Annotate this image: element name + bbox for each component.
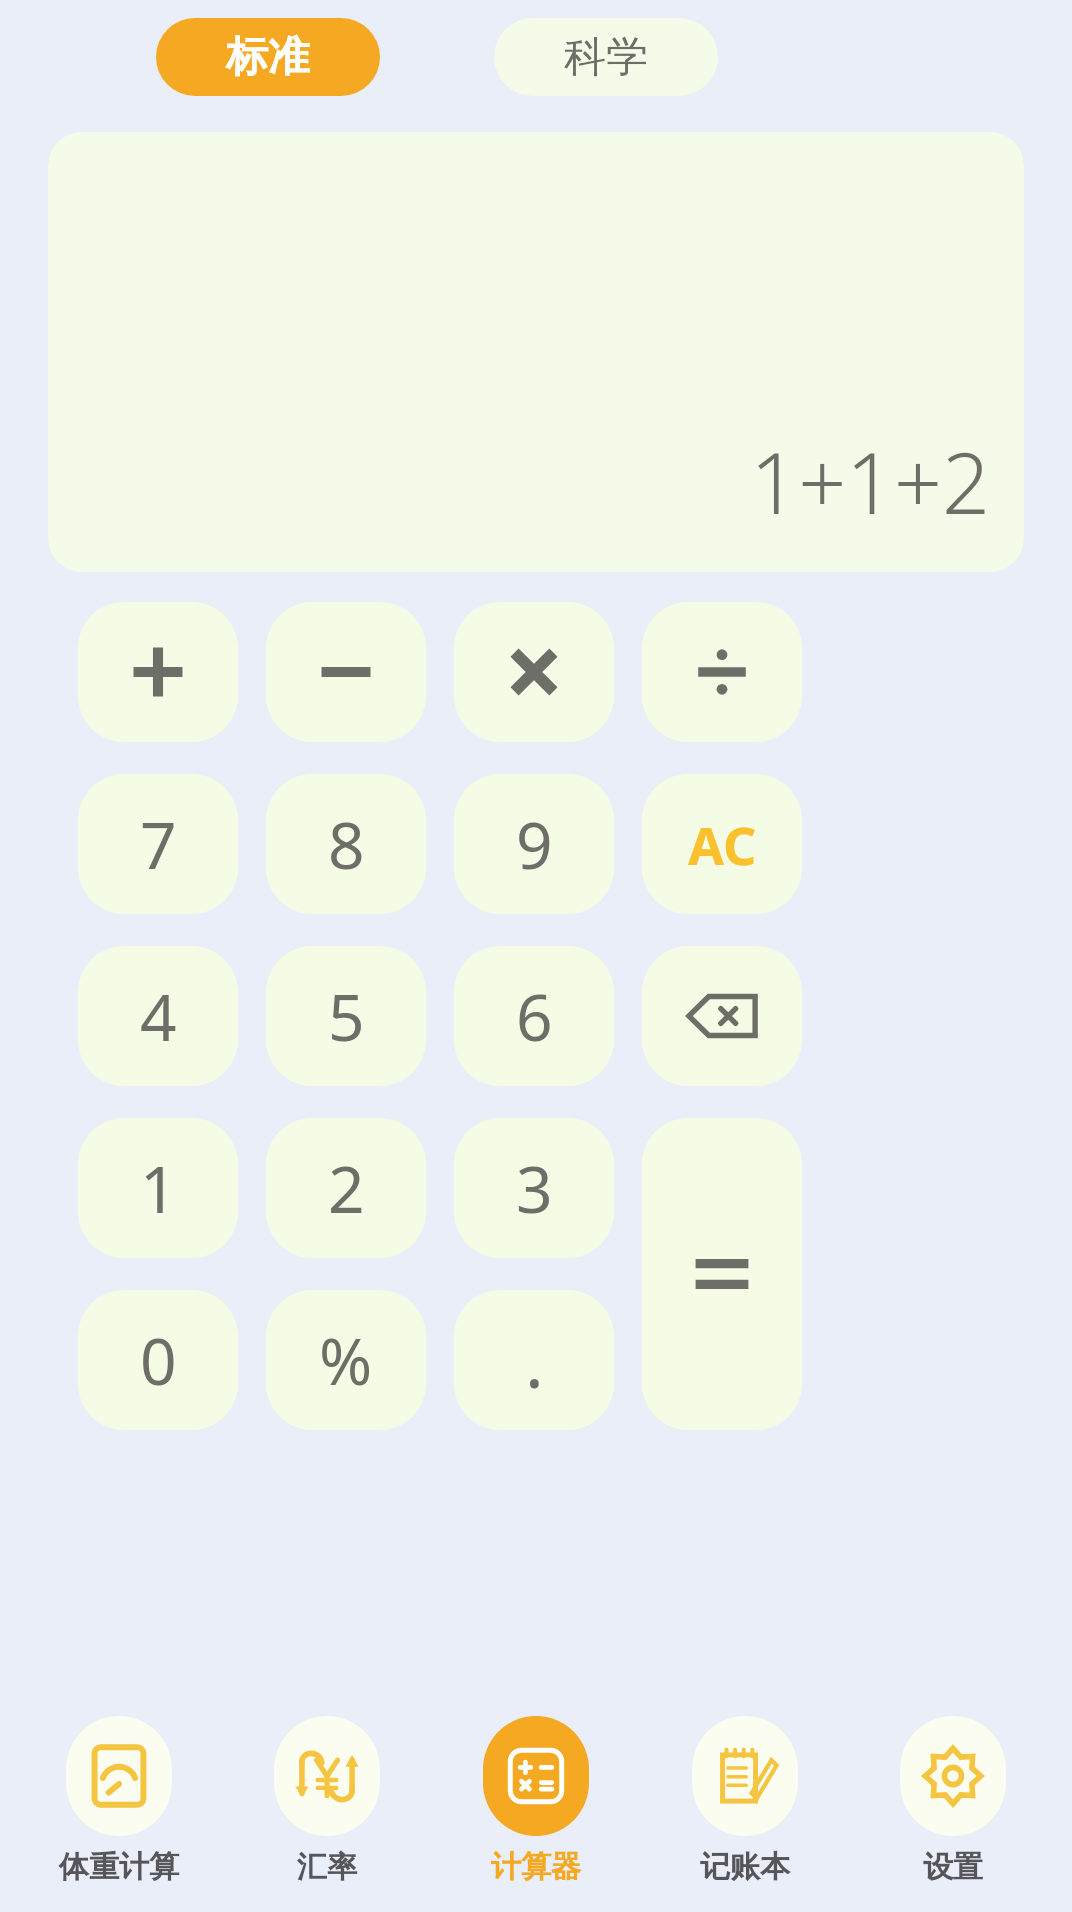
staticText: 6	[516, 973, 553, 1060]
staticText: 标准	[226, 31, 310, 84]
button[interactable]: Equals	[642, 1118, 802, 1430]
button[interactable]: 设置	[863, 1716, 1043, 1886]
staticText: 记账本	[700, 1848, 790, 1886]
button[interactable]: AC	[642, 774, 802, 914]
button[interactable]: 3	[454, 1118, 614, 1258]
button[interactable]: 4	[78, 946, 238, 1086]
staticText: 3	[516, 1145, 553, 1232]
button[interactable]: 记账本	[655, 1716, 835, 1886]
staticText: 计算器	[491, 1848, 581, 1886]
button[interactable]: 体重计算	[29, 1716, 209, 1886]
button[interactable]: Backspace	[642, 946, 802, 1086]
staticText: 5	[328, 973, 365, 1060]
staticText: 0	[140, 1317, 177, 1404]
button[interactable]: %	[266, 1290, 426, 1430]
staticText: 1+1+2	[750, 424, 990, 538]
button[interactable]: .	[454, 1290, 614, 1430]
staticText: 2	[328, 1145, 365, 1232]
button[interactable]: 1	[78, 1118, 238, 1258]
button[interactable]: 计算器	[446, 1716, 626, 1886]
button[interactable]: 2	[266, 1118, 426, 1258]
staticText: 1	[140, 1145, 177, 1232]
button[interactable]: 5	[266, 946, 426, 1086]
staticText: 设置	[923, 1848, 983, 1886]
button[interactable]: 6	[454, 946, 614, 1086]
button[interactable]: Minus	[266, 602, 426, 742]
staticText: 8	[328, 801, 365, 888]
button[interactable]: 汇率	[237, 1716, 417, 1886]
button[interactable]: Divide	[642, 602, 802, 742]
staticText: 4	[140, 973, 177, 1060]
button[interactable]: 0	[78, 1290, 238, 1430]
staticText: AC	[688, 809, 757, 880]
button[interactable]: 7	[78, 774, 238, 914]
staticText: 9	[516, 801, 553, 888]
staticText: 7	[140, 801, 177, 888]
button[interactable]: 科学	[494, 18, 718, 96]
button[interactable]: Plus	[78, 602, 238, 742]
button[interactable]: 8	[266, 774, 426, 914]
staticText: .	[525, 1313, 544, 1408]
button[interactable]: 9	[454, 774, 614, 914]
staticText: 汇率	[297, 1848, 357, 1886]
staticText: 体重计算	[59, 1848, 179, 1886]
staticText: %	[319, 1317, 373, 1404]
button[interactable]: 标准	[156, 18, 380, 96]
staticText: 科学	[564, 31, 648, 84]
button[interactable]: Multiply	[454, 602, 614, 742]
